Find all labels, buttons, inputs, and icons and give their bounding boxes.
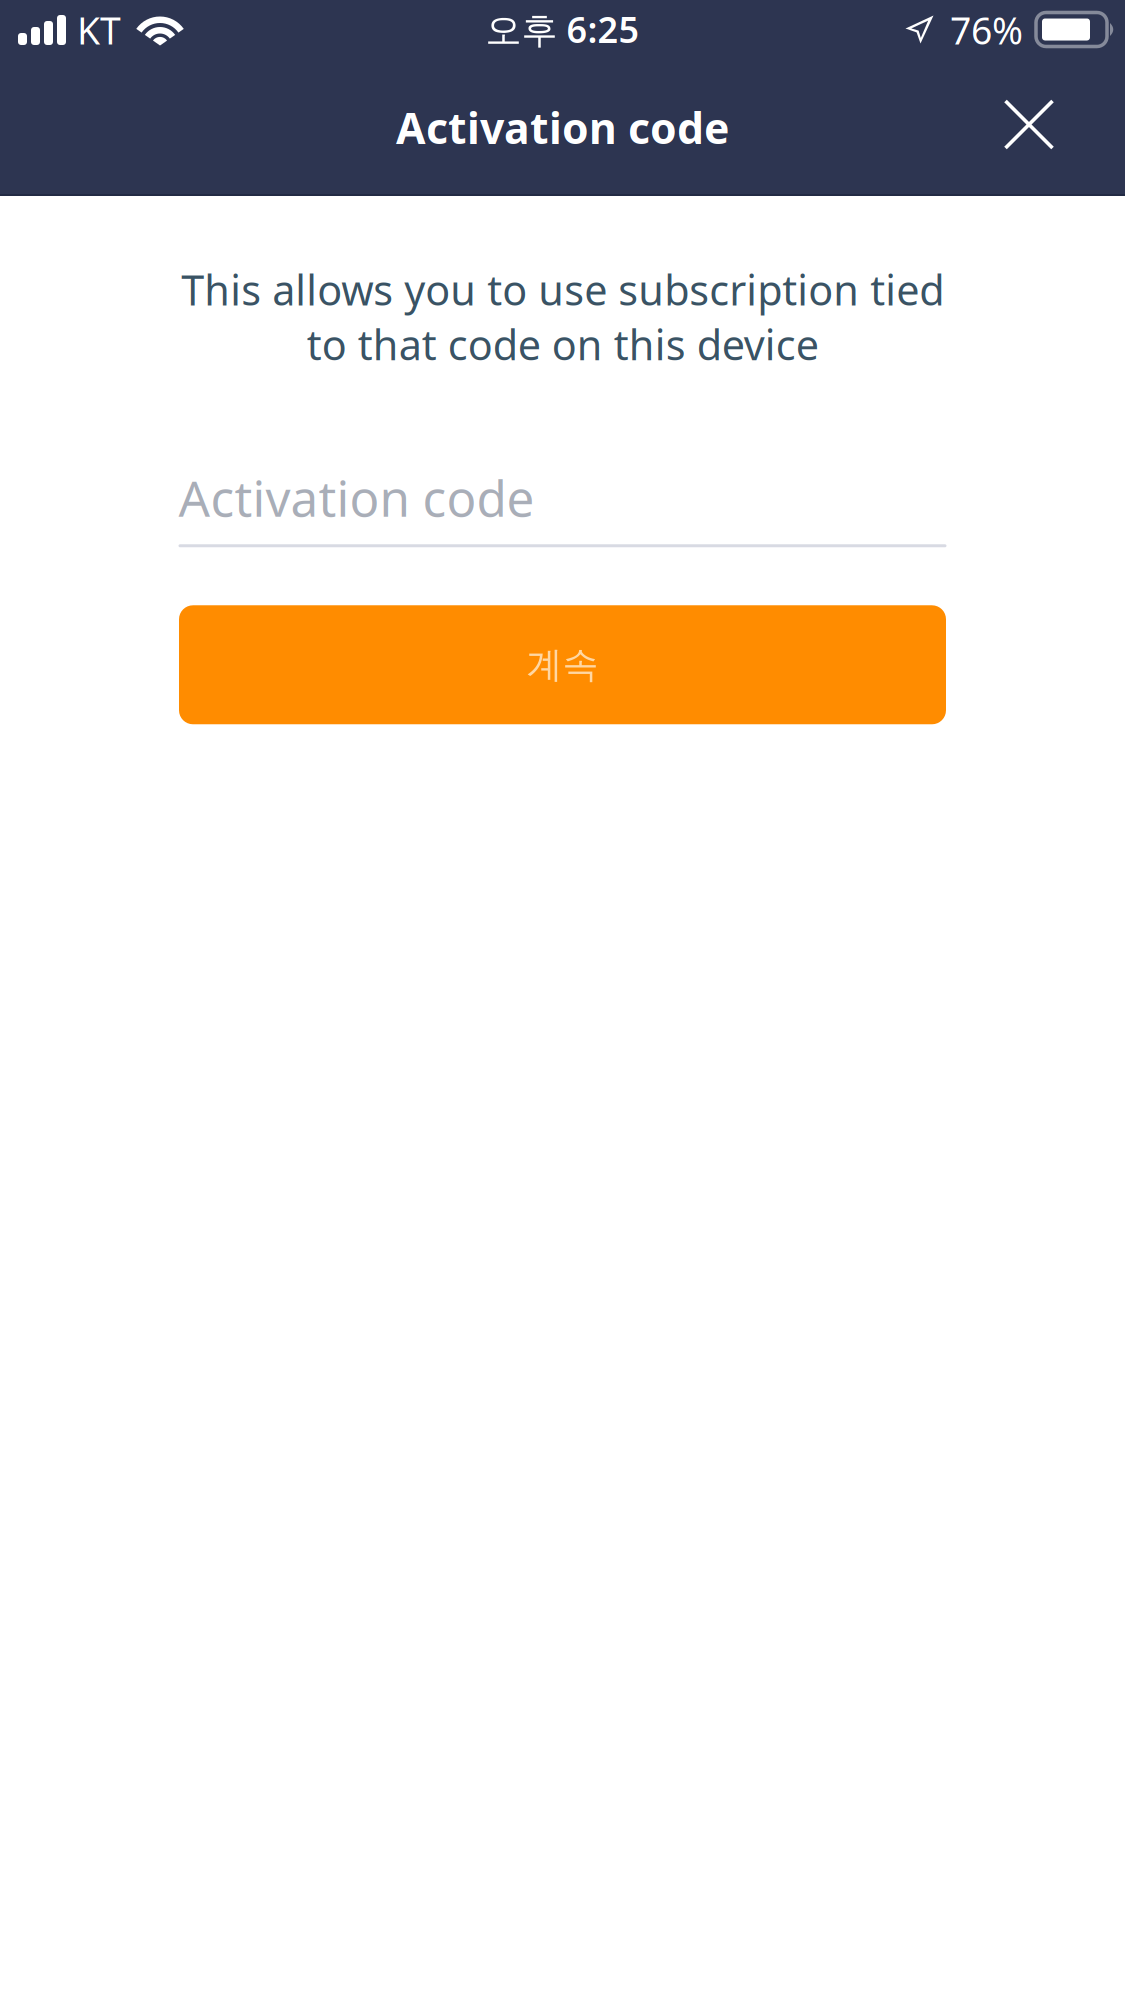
staticText: 계속 xyxy=(526,643,598,687)
staticText: 76% xyxy=(950,5,1023,55)
staticText: KT xyxy=(77,5,121,55)
button[interactable]: 계속 xyxy=(179,605,946,724)
button[interactable]: Close xyxy=(975,70,1083,178)
staticText: Activation code xyxy=(178,465,534,530)
button[interactable]: Activation code xyxy=(178,465,946,547)
staticText: Activation code xyxy=(396,99,729,156)
staticText: 오후 6:25 xyxy=(485,5,639,53)
staticText: This allows you to use subscription tied… xyxy=(181,262,944,372)
